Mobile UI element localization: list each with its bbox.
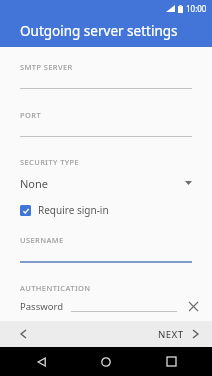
staticText: PORT	[20, 110, 42, 120]
button[interactable]: Previous	[0, 321, 46, 347]
staticText: AUTHENTICATION	[20, 283, 91, 293]
button[interactable]: None	[0, 172, 212, 194]
staticText: SMTP SERVER	[20, 62, 73, 72]
staticText: Password	[20, 300, 63, 313]
staticText: Require sign-in	[38, 203, 109, 217]
staticText: USERNAME	[20, 235, 64, 245]
button[interactable]: Recent apps	[148, 347, 194, 376]
button[interactable]: Require sign-in	[0, 200, 212, 220]
button[interactable]: NEXT	[142, 321, 212, 347]
staticText: None	[20, 176, 49, 191]
button[interactable]: Password	[0, 299, 212, 313]
button[interactable]: Clear password	[186, 299, 200, 313]
button[interactable]: Home	[83, 347, 129, 376]
staticText: 10:00	[186, 3, 207, 14]
staticText: Outgoing server settings	[20, 22, 178, 40]
staticText: NEXT	[158, 328, 184, 341]
button[interactable]: Back	[19, 347, 65, 376]
staticText: SECURITY TYPE	[20, 157, 80, 167]
